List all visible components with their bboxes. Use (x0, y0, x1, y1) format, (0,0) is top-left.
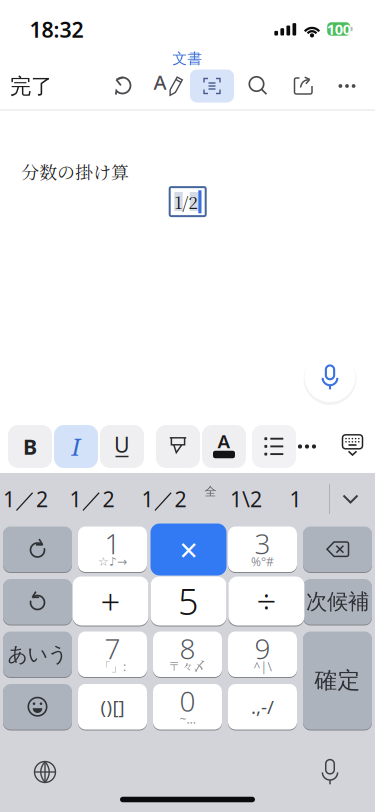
button[interactable] (29, 756, 61, 788)
staticText: 1 (104, 525, 120, 562)
button[interactable]: U (100, 425, 144, 468)
staticText: 1／2 (3, 485, 48, 513)
staticText: 1\2 (230, 485, 262, 513)
button[interactable]: 3 (228, 526, 297, 572)
staticText: 1／2 (69, 485, 114, 513)
button[interactable]: A (202, 425, 246, 468)
staticText: ~… (179, 711, 195, 727)
button[interactable]: 確定 (303, 631, 372, 729)
button[interactable] (336, 430, 368, 462)
button[interactable]: × (150, 523, 226, 575)
staticText: 1 (289, 485, 301, 513)
staticText: A (153, 69, 166, 95)
staticText: %°# (251, 553, 274, 569)
button[interactable]: ÷ (228, 576, 304, 625)
button[interactable]: 1／2 (69, 479, 114, 519)
button[interactable] (329, 68, 365, 104)
staticText: 7 (104, 630, 120, 667)
staticText: 「」: (99, 658, 126, 674)
button[interactable] (303, 526, 372, 572)
staticText (259, 587, 265, 617)
button[interactable] (314, 756, 346, 788)
button[interactable] (156, 425, 200, 468)
button[interactable] (78, 579, 147, 624)
staticText: あいう (7, 642, 67, 667)
staticText: × (179, 528, 197, 571)
staticText: 次候補 (306, 589, 369, 615)
staticText: 100 (327, 19, 351, 39)
staticText: 確定 (314, 667, 360, 694)
staticText: .,-/ (251, 694, 274, 719)
button[interactable] (290, 426, 324, 466)
button[interactable] (153, 579, 222, 624)
button[interactable]: .,-/ (228, 684, 297, 729)
staticText: ^|\ (253, 658, 271, 674)
button[interactable]: 0 (153, 684, 222, 729)
staticText: B (23, 432, 37, 461)
button[interactable] (3, 579, 72, 624)
button[interactable] (190, 69, 234, 102)
button[interactable] (3, 684, 72, 729)
button[interactable]: 7 (78, 631, 147, 677)
button[interactable] (252, 425, 296, 468)
staticText (109, 587, 115, 617)
staticText (184, 587, 190, 617)
button[interactable]: 1\2 (230, 479, 262, 519)
button[interactable] (332, 481, 368, 517)
button[interactable] (303, 349, 357, 403)
staticText: 8 (179, 630, 195, 667)
button[interactable] (242, 70, 274, 102)
button[interactable] (3, 526, 72, 572)
staticText: 0 (179, 682, 195, 720)
button[interactable]: 5 (150, 576, 226, 625)
button[interactable] (228, 579, 297, 624)
staticText: 18:32 (29, 15, 83, 44)
staticText: 全 (204, 484, 216, 499)
staticText: 〒々〆 (169, 659, 205, 674)
button[interactable]: 8 (153, 631, 222, 677)
button[interactable]: 1／2 (141, 479, 186, 519)
staticText: 完了 (10, 73, 52, 100)
button[interactable]: 次候補 (303, 579, 372, 624)
staticText: ☆♪→ (98, 555, 127, 568)
staticText: U (114, 430, 130, 459)
staticText: 9 (254, 630, 270, 667)
button[interactable]: 1／2 (3, 479, 48, 519)
button[interactable]: 9 (228, 631, 297, 677)
button[interactable]: A (150, 70, 186, 102)
button[interactable] (106, 70, 138, 102)
button[interactable]: ()[] (78, 684, 147, 729)
staticText: 5 (178, 577, 199, 625)
staticText: 3 (254, 525, 270, 562)
staticText: 文書 (172, 49, 202, 67)
staticText: + (100, 578, 120, 624)
staticText: 1/2 (174, 189, 198, 214)
staticText: ÷ (256, 578, 276, 624)
button[interactable]: 1 (78, 526, 147, 572)
staticText: A (217, 429, 230, 453)
button[interactable]: B (8, 425, 52, 468)
button[interactable]: あいう (3, 631, 72, 677)
staticText: 1／2 (141, 485, 186, 513)
staticText: I (71, 430, 80, 463)
button[interactable] (286, 71, 318, 101)
staticText: 分数の掛け算 (21, 159, 129, 184)
button[interactable]: + (72, 576, 148, 625)
button[interactable]: 完了 (9, 66, 53, 106)
button[interactable]: I (54, 425, 98, 468)
button[interactable]: 1 (289, 479, 301, 519)
staticText: ()[] (100, 694, 124, 719)
